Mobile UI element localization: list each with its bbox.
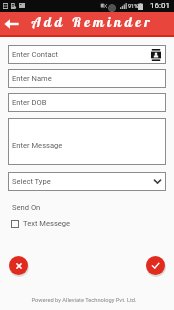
staticText: Powered by Alleviate Technology Pvt. Ltd… <box>31 297 137 304</box>
button[interactable]: Enter Name <box>8 69 166 88</box>
staticText: 16:01 <box>150 1 170 10</box>
button[interactable]: Select Type <box>8 172 166 191</box>
staticText: Enter DOB <box>12 98 47 107</box>
staticText: 91% <box>128 3 139 9</box>
button[interactable]: Cancel <box>9 256 28 275</box>
staticText: Enter Contact <box>12 50 59 59</box>
staticText: Add Reminder <box>32 13 153 31</box>
staticText: Text Messege <box>23 219 71 228</box>
button[interactable]: Back <box>1 15 21 35</box>
staticText: Enter Message <box>12 141 63 150</box>
staticText: Send On <box>12 203 41 212</box>
button[interactable]: Enter DOB <box>8 93 166 112</box>
button[interactable]: Save <box>146 256 165 275</box>
button[interactable]: Text Messege <box>11 219 71 228</box>
staticText: Select Type <box>12 177 51 186</box>
staticText: Enter Name <box>12 74 52 83</box>
button[interactable]: Enter Message <box>8 118 166 165</box>
button[interactable]: Enter Contact <box>8 45 166 64</box>
